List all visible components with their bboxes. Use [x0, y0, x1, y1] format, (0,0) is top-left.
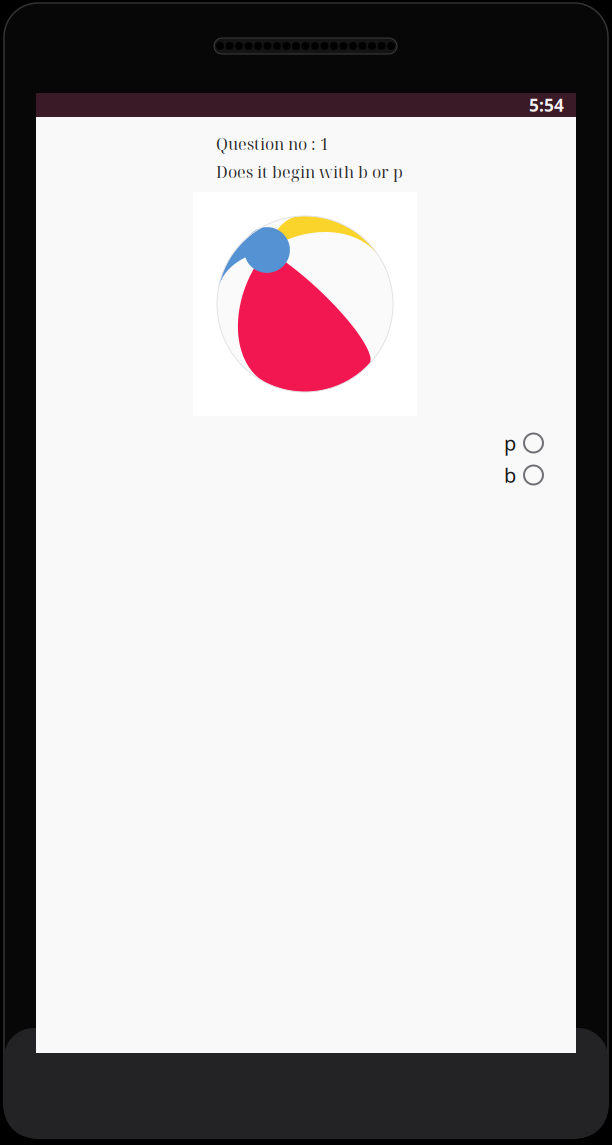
staticText: p [504, 430, 516, 456]
staticText: Question no : 1 [216, 133, 329, 155]
button[interactable]: p [504, 427, 570, 459]
staticText: 5:54 [529, 93, 564, 116]
staticText: b [504, 462, 516, 488]
button[interactable]: b [504, 459, 570, 491]
staticText: Does it begin with b or p [216, 161, 403, 183]
